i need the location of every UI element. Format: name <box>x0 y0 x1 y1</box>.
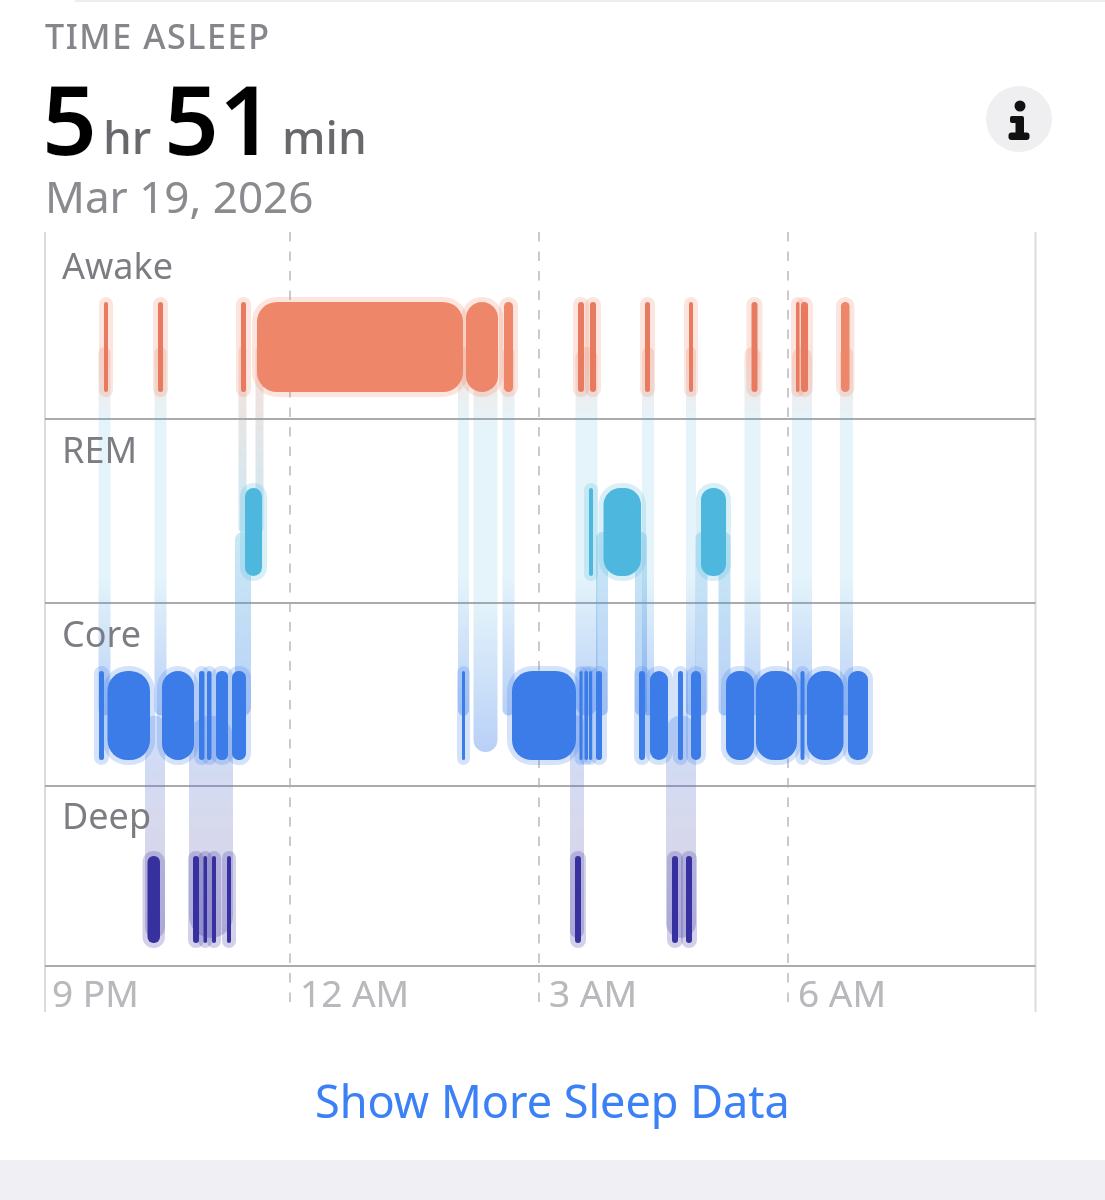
staticText: min <box>282 105 367 168</box>
staticText: hr <box>103 105 152 168</box>
staticText: Awake <box>62 241 174 290</box>
staticText: 6 AM <box>798 967 886 1017</box>
staticText: 9 PM <box>52 967 139 1017</box>
button[interactable]: Show More Sleep Data <box>295 1062 810 1139</box>
staticText: 5 <box>42 52 97 183</box>
staticText: Show More Sleep Data <box>315 1070 790 1131</box>
staticText: Deep <box>62 791 152 840</box>
button[interactable] <box>986 86 1052 152</box>
staticText: 51 <box>164 52 274 183</box>
staticText: Mar 19, 2026 <box>45 166 314 226</box>
staticText: Core <box>62 609 141 658</box>
staticText: TIME ASLEEP <box>45 13 271 59</box>
staticText: 3 AM <box>549 967 637 1017</box>
staticText: REM <box>62 425 138 474</box>
staticText: 12 AM <box>300 967 410 1017</box>
